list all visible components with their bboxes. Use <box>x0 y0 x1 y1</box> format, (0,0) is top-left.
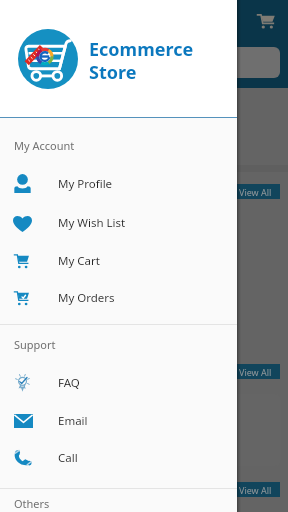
button[interactable]: My Wish List <box>0 204 237 242</box>
button[interactable]: Search <box>175 47 280 78</box>
button[interactable]: My Orders <box>0 279 237 317</box>
button[interactable]: Shopping cart <box>250 5 282 37</box>
staticText: Email <box>58 413 88 429</box>
staticText: View All <box>239 484 272 496</box>
staticText: View All <box>239 186 272 198</box>
staticText: My Profile <box>58 176 113 192</box>
staticText: Call <box>58 450 78 466</box>
button[interactable]: View All <box>230 184 280 199</box>
button[interactable]: Email <box>0 402 237 440</box>
staticText: Ecommerce Store <box>89 37 194 84</box>
button[interactable]: My Profile <box>0 165 237 203</box>
button[interactable]: View All <box>230 364 280 379</box>
staticText: Others <box>14 496 50 511</box>
staticText: My Cart <box>58 253 100 269</box>
staticText: My Wish List <box>58 215 126 231</box>
button[interactable]: View All <box>230 482 280 497</box>
staticText: FAQ <box>58 375 80 391</box>
staticText: Support <box>14 337 56 352</box>
staticText: View All <box>239 366 272 378</box>
staticText: My Orders <box>58 290 115 306</box>
button[interactable]: Call <box>0 439 237 477</box>
button[interactable]: My Cart <box>0 242 237 280</box>
button[interactable]: FAQ <box>0 364 237 402</box>
staticText: My Account <box>14 138 75 153</box>
